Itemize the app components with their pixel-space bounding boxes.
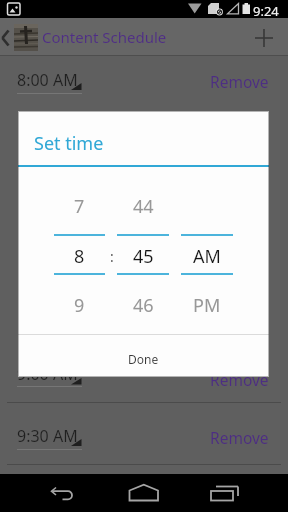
staticText: 8	[74, 244, 85, 269]
staticText: 44	[133, 194, 154, 219]
staticText: 9:00 AM	[17, 363, 78, 385]
button[interactable]: 8	[54, 242, 105, 270]
button[interactable]: 45	[117, 242, 169, 270]
staticText: PM	[193, 293, 221, 318]
button[interactable]	[0, 18, 288, 55]
staticText: 46	[133, 293, 154, 318]
staticText: 45	[133, 244, 154, 269]
staticText: 9	[74, 293, 85, 318]
staticText: AM	[193, 244, 221, 269]
staticText: Content Schedule	[42, 27, 167, 47]
button[interactable]: AM	[181, 242, 233, 270]
button[interactable]	[40, 476, 88, 510]
staticText: Done	[128, 351, 159, 367]
staticText: Remove	[210, 427, 269, 448]
button[interactable]: Remove	[200, 70, 269, 92]
staticText: Set time	[34, 131, 104, 156]
button[interactable]: Done	[93, 344, 193, 374]
button[interactable]: Remove	[200, 426, 269, 448]
staticText: :	[110, 247, 114, 266]
button[interactable]	[120, 476, 168, 510]
staticText: 9:30 AM	[17, 425, 78, 447]
button[interactable]: 8:00 AM	[17, 69, 87, 91]
staticText: 8:00 AM	[17, 69, 78, 91]
staticText: Remove	[210, 71, 269, 92]
staticText: 7	[74, 194, 85, 219]
button[interactable]	[200, 476, 248, 510]
staticText: Remove	[210, 369, 269, 390]
button[interactable]: 9:30 AM	[17, 425, 87, 447]
staticText: 9:24	[253, 2, 279, 16]
